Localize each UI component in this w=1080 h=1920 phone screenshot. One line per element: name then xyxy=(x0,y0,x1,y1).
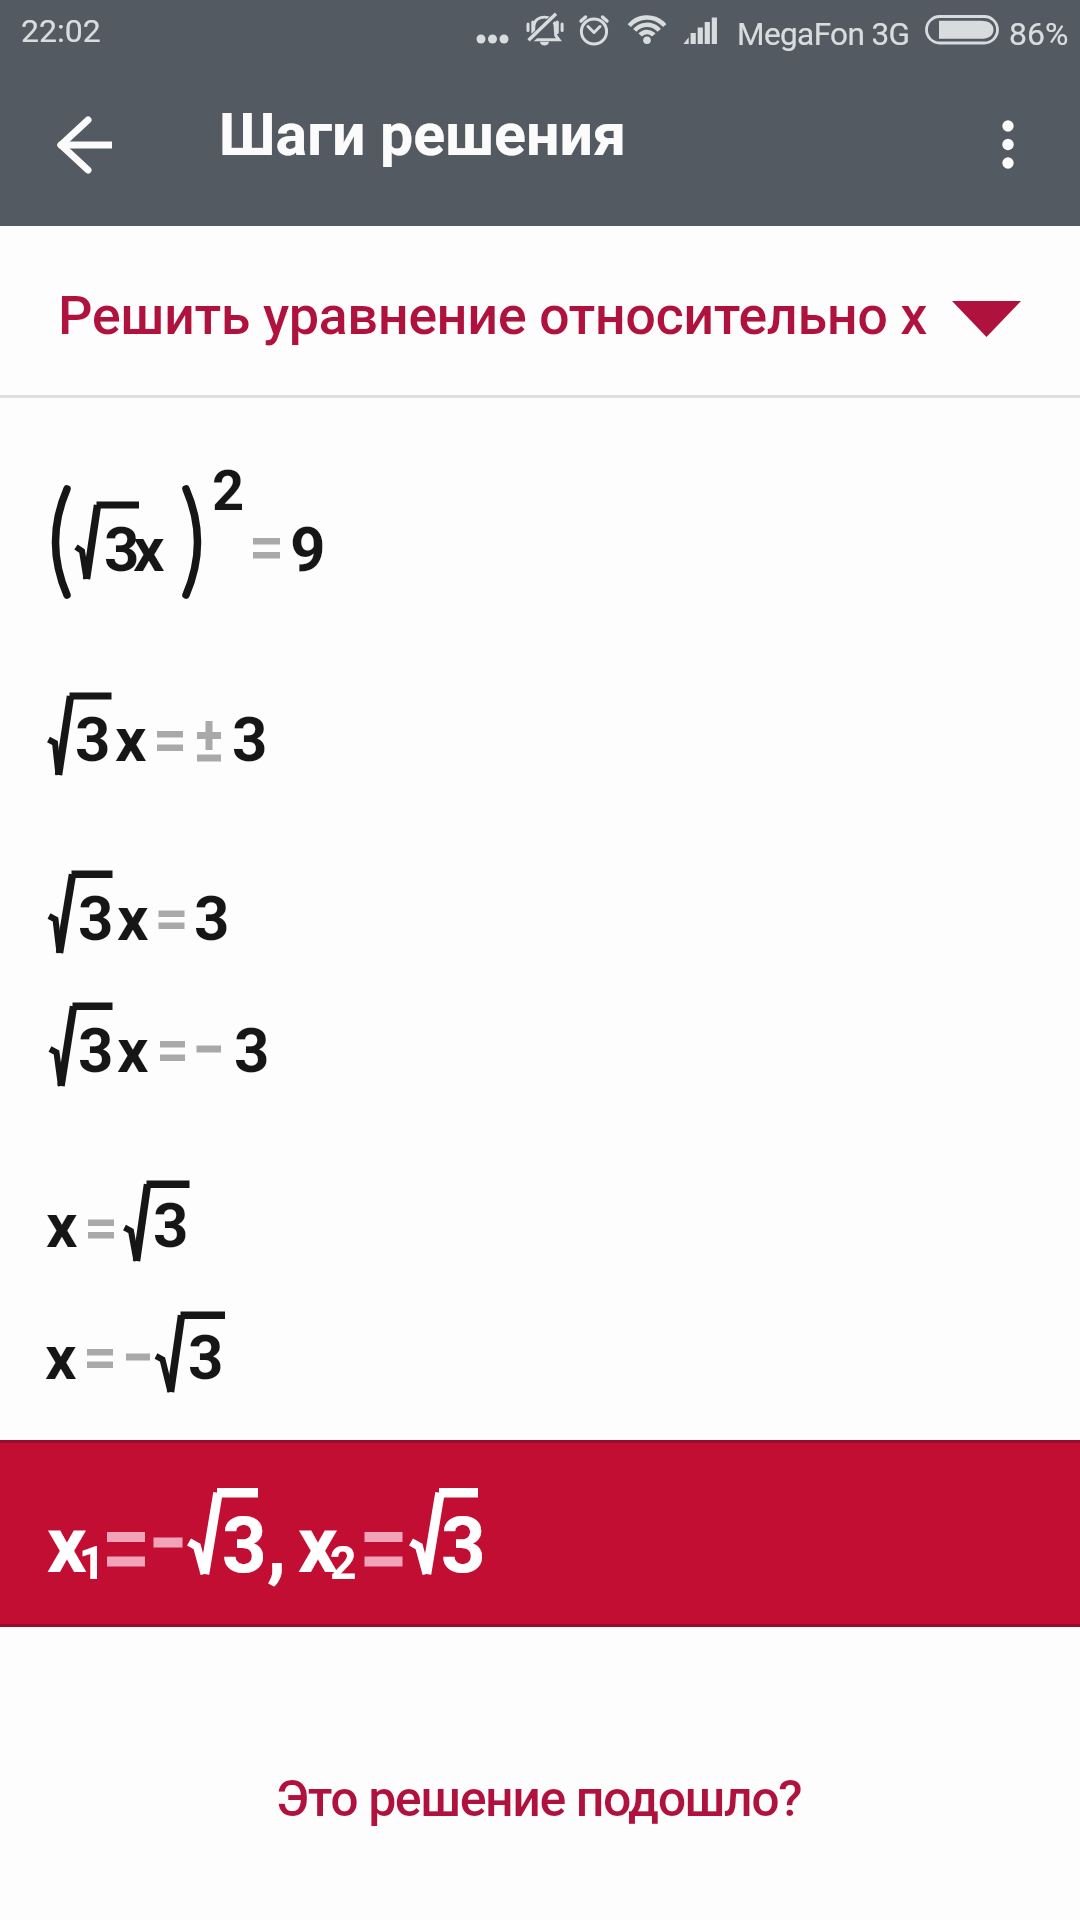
staticText: 1 xyxy=(79,1536,106,1590)
button[interactable] xyxy=(955,95,1055,195)
staticText: 3 xyxy=(75,703,111,776)
staticText: 2 xyxy=(330,1536,357,1590)
staticText: x xyxy=(47,1500,87,1591)
button[interactable] xyxy=(255,1745,825,1855)
staticText: 3 xyxy=(104,513,140,586)
staticText: x xyxy=(117,1014,149,1087)
staticText: 9 xyxy=(290,513,326,586)
staticText: 2 xyxy=(212,458,245,524)
staticText: 86% xyxy=(1009,15,1069,53)
staticText: 3 xyxy=(78,882,114,955)
staticText: x xyxy=(46,1189,78,1262)
staticText: 3 xyxy=(78,1014,114,1087)
staticText: x xyxy=(298,1500,338,1591)
staticText: 22:02 xyxy=(21,12,101,50)
staticText: 3 xyxy=(153,1189,189,1262)
staticText: Это решение подошло? xyxy=(276,1770,802,1829)
staticText: 3 xyxy=(222,1500,267,1591)
staticText: 3 xyxy=(232,703,268,776)
button[interactable] xyxy=(40,100,130,190)
staticText: x xyxy=(115,703,147,776)
staticText: x xyxy=(117,882,149,955)
staticText: 3 xyxy=(234,1014,270,1087)
staticText: Решить уравнение относительно x xyxy=(58,284,928,347)
staticText: x xyxy=(45,1321,77,1394)
staticText: 3 xyxy=(188,1321,224,1394)
staticText: x xyxy=(133,513,165,586)
button[interactable] xyxy=(0,258,1080,383)
staticText: 3 xyxy=(194,882,230,955)
staticText: MegaFon 3G xyxy=(737,16,910,53)
staticText: , xyxy=(267,1500,287,1591)
staticText: 3 xyxy=(441,1500,486,1591)
staticText: Шаги решения xyxy=(219,100,626,169)
